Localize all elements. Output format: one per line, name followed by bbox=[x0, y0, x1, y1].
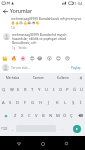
staticText: H bbox=[39, 100, 43, 106]
button[interactable]: Emoji bbox=[36, 54, 44, 62]
button[interactable]: B bbox=[40, 109, 47, 122]
staticText: K bbox=[56, 100, 59, 106]
button[interactable]: N bbox=[47, 109, 54, 122]
button[interactable]: Q bbox=[0, 83, 8, 96]
staticText: 👑 bbox=[2, 56, 8, 61]
staticText: W bbox=[10, 87, 14, 93]
button[interactable]: Z bbox=[11, 109, 19, 122]
button[interactable]: D bbox=[14, 96, 21, 109]
button[interactable]: Ş bbox=[69, 96, 77, 109]
staticText: ?123 bbox=[1, 127, 8, 131]
button[interactable]: Ü bbox=[78, 83, 85, 96]
button[interactable]: A bbox=[0, 96, 7, 109]
staticText: N bbox=[49, 113, 53, 119]
button[interactable]: J bbox=[45, 96, 53, 109]
staticText: 🌸 bbox=[20, 56, 26, 61]
button[interactable]: K bbox=[53, 96, 61, 109]
staticText: Tamam bbox=[33, 76, 44, 80]
button[interactable]: Home bbox=[37, 138, 48, 149]
staticText: X bbox=[21, 113, 24, 119]
staticText: Z bbox=[14, 113, 17, 119]
button[interactable]: Ç bbox=[68, 109, 75, 122]
staticText: S bbox=[9, 100, 12, 106]
button[interactable]: Back bbox=[0, 7, 10, 16]
button[interactable]: L bbox=[61, 96, 69, 109]
button[interactable]: Voice input bbox=[76, 73, 85, 83]
staticText: 21:04 bbox=[72, 1, 83, 6]
staticText: V bbox=[35, 113, 38, 119]
button[interactable]: V bbox=[33, 109, 40, 122]
staticText: 😢 bbox=[65, 56, 70, 61]
button[interactable]: Paylaş bbox=[70, 66, 82, 70]
staticText: Yorum ekle... bbox=[11, 66, 31, 70]
button[interactable]: Emoji bbox=[19, 54, 27, 62]
staticText: Ğ bbox=[73, 87, 77, 93]
button[interactable]: Emoji bbox=[54, 54, 62, 62]
button[interactable]: ?123 bbox=[0, 122, 9, 135]
staticText: 😂 bbox=[37, 56, 43, 61]
button[interactable]: H bbox=[37, 96, 45, 109]
button[interactable]: W bbox=[8, 83, 15, 96]
button[interactable]: Ö bbox=[61, 109, 68, 122]
button[interactable]: M bbox=[54, 109, 61, 122]
staticText: Merhaba bbox=[6, 76, 20, 80]
button[interactable]: E bbox=[15, 83, 22, 96]
button[interactable]: Send bbox=[68, 122, 85, 135]
button[interactable]: mehmetsagli9999 Buradsvhd mvysh hazardsl… bbox=[0, 30, 85, 50]
button[interactable]: Back bbox=[13, 138, 24, 149]
staticText: 😍 bbox=[30, 56, 35, 61]
staticText: E bbox=[17, 87, 20, 93]
staticText: T bbox=[31, 87, 34, 93]
button[interactable]: U bbox=[43, 83, 50, 96]
staticText: mehmetsagli9999 Buradahlanzk mfsjmrengru… bbox=[11, 17, 81, 21]
button[interactable]: C bbox=[26, 109, 33, 122]
staticText: D bbox=[16, 100, 20, 106]
button[interactable]: Backspace bbox=[75, 109, 85, 122]
staticText: 12s bbox=[11, 26, 16, 30]
button[interactable]: Emoji bbox=[10, 54, 18, 62]
button[interactable]: Y bbox=[36, 83, 43, 96]
button[interactable]: Emoji bbox=[45, 54, 53, 62]
button[interactable]: X bbox=[19, 109, 26, 122]
staticText: I bbox=[53, 87, 55, 93]
button[interactable]: , bbox=[9, 122, 15, 135]
button[interactable]: R bbox=[22, 83, 29, 96]
button[interactable]: Tamam bbox=[26, 73, 51, 83]
staticText: P bbox=[66, 87, 69, 93]
staticText: Y bbox=[38, 87, 41, 93]
staticText: G bbox=[31, 100, 35, 106]
button[interactable]: Emoji bbox=[1, 54, 9, 62]
staticText: M bbox=[56, 113, 60, 119]
staticText: Ş bbox=[72, 100, 75, 106]
button[interactable]: O bbox=[57, 83, 64, 96]
button[interactable]: F bbox=[21, 96, 29, 109]
staticText: O bbox=[59, 87, 63, 93]
button[interactable]: Emoji bbox=[63, 54, 71, 62]
staticText: F bbox=[24, 100, 27, 106]
button[interactable]: Emoji bbox=[28, 54, 36, 62]
staticText: Kullanıcı bbox=[57, 76, 70, 80]
staticText: J bbox=[48, 100, 50, 106]
staticText: C bbox=[28, 113, 31, 119]
button[interactable]: Ğ bbox=[71, 83, 78, 96]
staticText: 😊 bbox=[56, 56, 61, 61]
button[interactable]: mehmetsagli9999 Buradahlanzk mfsjmrengru… bbox=[0, 16, 85, 30]
button[interactable]: T bbox=[29, 83, 36, 96]
staticText: 🔥👍😍-💪😂-😎👏 bbox=[11, 21, 40, 25]
button[interactable]: G bbox=[29, 96, 37, 109]
button[interactable]: P bbox=[64, 83, 71, 96]
button[interactable]: S bbox=[7, 96, 14, 109]
button[interactable]: Kullanıcı bbox=[51, 73, 76, 83]
staticText: Yorumlar bbox=[10, 8, 33, 15]
staticText: mehmetsagli9999 Buradsvhd mvysh hazardsl… bbox=[12, 33, 82, 45]
staticText: R bbox=[24, 87, 27, 93]
staticText: 1g Yanıtla bbox=[12, 46, 27, 50]
button[interactable]: Shift bbox=[0, 109, 11, 122]
staticText: Ö bbox=[63, 113, 67, 119]
button[interactable]: İ bbox=[77, 96, 85, 109]
button[interactable]: Recents bbox=[61, 138, 72, 149]
button[interactable]: Merhaba bbox=[0, 73, 26, 83]
button[interactable]: I bbox=[50, 83, 57, 96]
